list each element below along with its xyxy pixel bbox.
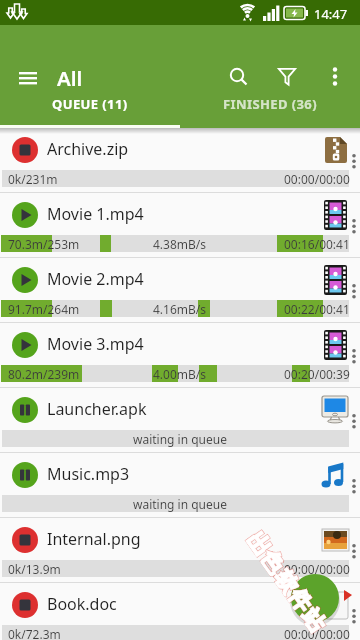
- staticText: 4.00mB/s: [153, 366, 207, 382]
- button[interactable]: Music.mp3: [0, 453, 360, 518]
- staticText: Music.mp3: [47, 463, 130, 485]
- staticText: 出色软件站: [244, 524, 336, 636]
- button[interactable]: [273, 63, 301, 91]
- button[interactable]: [321, 63, 349, 91]
- staticText: 00:00/00:00: [284, 561, 350, 577]
- staticText: 4.38mB/s: [153, 236, 207, 252]
- staticText: 0k/13.9m: [8, 561, 61, 577]
- button[interactable]: QUEUE (11): [0, 90, 180, 118]
- button[interactable]: Movie 1.mp4: [0, 193, 360, 258]
- staticText: Archive.zip: [47, 138, 129, 160]
- staticText: 00:00/00:00: [284, 626, 350, 640]
- staticText: Movie 1.mp4: [47, 203, 144, 225]
- staticText: All: [57, 64, 83, 92]
- button[interactable]: Book.doc: [0, 583, 360, 640]
- staticText: 80.2m/239m: [8, 366, 80, 382]
- button[interactable]: Archive.zip: [0, 128, 360, 193]
- staticText: 91.7m/264m: [8, 301, 80, 317]
- staticText: FINISHED (36): [223, 95, 317, 113]
- staticText: QUEUE (11): [52, 95, 128, 113]
- button[interactable]: Internal.png: [0, 518, 360, 583]
- staticText: Internal.png: [47, 528, 141, 550]
- button[interactable]: Movie 2.mp4: [0, 258, 360, 323]
- staticText: Launcher.apk: [47, 398, 147, 420]
- staticText: 4.16mB/s: [153, 301, 207, 317]
- staticText: Movie 3.mp4: [47, 333, 144, 355]
- staticText: 出色软件站: [244, 524, 336, 636]
- staticText: 出色软件站: [244, 524, 336, 636]
- staticText: 0k/231m: [8, 171, 58, 187]
- staticText: 14:47: [314, 5, 348, 23]
- staticText: Book.doc: [47, 593, 117, 615]
- staticText: 00:20/00:39: [284, 366, 350, 382]
- button[interactable]: [12, 64, 44, 92]
- staticText: 00:22/00:41: [284, 301, 350, 317]
- staticText: Movie 2.mp4: [47, 268, 144, 290]
- staticText: 00:16/00:41: [284, 236, 350, 252]
- button[interactable]: FINISHED (36): [180, 90, 360, 118]
- staticText: waiting in queue: [133, 431, 227, 447]
- button[interactable]: [291, 574, 339, 622]
- button[interactable]: Movie 3.mp4: [0, 323, 360, 388]
- staticText: 0k/72.3m: [8, 626, 61, 640]
- button[interactable]: [225, 63, 253, 91]
- staticText: waiting in queue: [133, 496, 227, 512]
- staticText: 70.3m/253m: [8, 236, 80, 252]
- button[interactable]: Launcher.apk: [0, 388, 360, 453]
- staticText: 00:00/00:00: [284, 171, 350, 187]
